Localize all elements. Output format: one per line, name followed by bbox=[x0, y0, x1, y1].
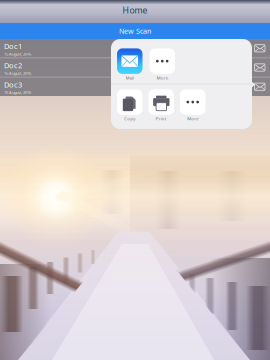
button[interactable]: New Scan bbox=[0, 23, 270, 39]
staticText: Copy bbox=[124, 116, 135, 122]
staticText: Mail bbox=[126, 75, 134, 81]
staticText: Doc3 bbox=[4, 79, 22, 90]
button[interactable]: Copy bbox=[117, 89, 142, 122]
button[interactable]: More bbox=[180, 89, 205, 122]
button[interactable]: Print bbox=[148, 89, 174, 122]
staticText: Print bbox=[156, 116, 167, 122]
button[interactable]: Doc2 bbox=[0, 58, 270, 77]
staticText: 15 August, 2016 bbox=[4, 90, 31, 95]
button[interactable]: Doc3 bbox=[0, 77, 270, 96]
staticText: Home bbox=[122, 4, 147, 16]
staticText: 15 August, 2016 bbox=[4, 51, 31, 57]
staticText: More bbox=[157, 75, 168, 81]
button[interactable]: Mail bbox=[117, 48, 142, 81]
button[interactable]: More bbox=[149, 48, 175, 81]
button[interactable]: Doc1 bbox=[0, 39, 270, 57]
staticText: 15 August, 2016 bbox=[4, 70, 31, 76]
staticText: New Scan bbox=[119, 26, 151, 36]
staticText: Doc1 bbox=[4, 41, 22, 51]
staticText: Doc2 bbox=[4, 60, 22, 70]
staticText: More bbox=[187, 116, 198, 122]
